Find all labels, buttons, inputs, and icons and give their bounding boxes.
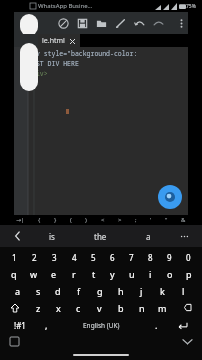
button[interactable]: l	[173, 282, 194, 299]
button[interactable]: m	[152, 299, 173, 316]
button[interactable]: !#1	[4, 316, 36, 334]
button[interactable]: Save	[73, 14, 92, 33]
button[interactable]: Open folder	[92, 14, 111, 33]
button[interactable]: 5	[84, 250, 103, 265]
staticText: 6	[110, 252, 115, 263]
staticText: '	[150, 216, 152, 224]
button[interactable]: r	[64, 265, 84, 282]
button[interactable]: z	[28, 299, 48, 316]
button[interactable]: Switch keyboard	[8, 335, 20, 347]
staticText: n	[139, 302, 145, 314]
button[interactable]: 8	[141, 250, 160, 265]
button[interactable]: {	[38, 216, 41, 224]
button[interactable]: '	[150, 216, 152, 224]
staticText: y	[110, 268, 115, 280]
button[interactable]: 2	[24, 250, 44, 265]
staticText: x	[56, 302, 61, 314]
button[interactable]: n	[131, 299, 152, 316]
button[interactable]: w	[24, 265, 44, 282]
button[interactable]: English (UK)	[56, 316, 146, 334]
staticText: →|	[16, 216, 25, 224]
button[interactable]: }	[54, 216, 57, 224]
staticText: q	[11, 268, 17, 280]
button[interactable]: j	[131, 282, 152, 299]
button[interactable]: Hide keyboard	[180, 334, 194, 348]
staticText: .	[155, 319, 158, 331]
button[interactable]: k	[152, 282, 173, 299]
staticText: p	[186, 268, 192, 280]
button[interactable]: g	[89, 282, 110, 299]
button[interactable]: 0	[179, 250, 198, 265]
button[interactable]: ,	[36, 316, 56, 334]
staticText: h	[118, 285, 124, 297]
button[interactable]: <	[101, 216, 105, 224]
button[interactable]: Redo	[149, 14, 168, 33]
button[interactable]: x	[48, 299, 68, 316]
button[interactable]: h	[110, 282, 131, 299]
button[interactable]: More suggestions	[176, 228, 192, 244]
staticText: o	[167, 268, 173, 280]
staticText: 75%	[186, 3, 196, 10]
staticText: (	[70, 216, 72, 224]
staticText: !#1	[14, 320, 26, 331]
button[interactable]: )	[85, 216, 87, 224]
button[interactable]: y	[103, 265, 122, 282]
button[interactable]: c	[68, 299, 89, 316]
button[interactable]: "	[165, 216, 168, 224]
button[interactable]: ;	[135, 216, 137, 224]
button[interactable]: 6	[103, 250, 122, 265]
button[interactable]: 7	[122, 250, 141, 265]
button[interactable]: Backspace	[173, 299, 200, 316]
staticText: g	[97, 285, 103, 297]
staticText: the	[94, 231, 107, 242]
button[interactable]: a	[140, 229, 157, 244]
button[interactable]: 9	[160, 250, 179, 265]
staticText: f	[77, 285, 81, 297]
button[interactable]: f	[68, 282, 89, 299]
button[interactable]: b	[110, 299, 131, 316]
button[interactable]: q	[4, 265, 24, 282]
button[interactable]: t	[84, 265, 103, 282]
button[interactable]: the	[88, 229, 113, 244]
staticText: >	[118, 216, 122, 224]
button[interactable]: u	[122, 265, 141, 282]
staticText: r	[72, 268, 76, 280]
button[interactable]: p	[179, 265, 198, 282]
staticText: j	[140, 285, 143, 297]
button[interactable]: i	[141, 265, 160, 282]
button[interactable]: >	[118, 216, 122, 224]
button[interactable]: &	[181, 216, 186, 224]
button[interactable]: Enter	[166, 316, 198, 334]
button[interactable]: .	[146, 316, 166, 334]
button[interactable]: (	[70, 216, 72, 224]
button[interactable]: More options	[174, 14, 188, 33]
button[interactable]: Edit	[111, 14, 130, 33]
button[interactable]: 4	[64, 250, 84, 265]
button[interactable]: Close tab	[69, 38, 76, 45]
button[interactable]: Run	[158, 185, 182, 209]
button[interactable]: a	[8, 282, 28, 299]
staticText: 2	[32, 252, 37, 263]
button[interactable]: o	[160, 265, 179, 282]
button[interactable]: Back	[10, 228, 26, 244]
staticText: a	[15, 285, 21, 297]
staticText: ,	[45, 319, 48, 331]
button[interactable]: Shift	[2, 299, 28, 316]
button[interactable]: Undo	[130, 14, 149, 33]
button[interactable]: 1	[4, 250, 24, 265]
button[interactable]: Sync	[54, 14, 73, 33]
staticText: k	[160, 285, 165, 297]
button[interactable]: v	[89, 299, 110, 316]
staticText: z	[36, 302, 41, 314]
staticText: is	[49, 231, 55, 242]
button[interactable]: le.html	[42, 34, 76, 47]
staticText: le.html	[42, 36, 65, 46]
button[interactable]: →|	[16, 216, 25, 224]
staticText: a	[146, 231, 151, 242]
button[interactable]: 3	[44, 250, 64, 265]
button[interactable]: s	[28, 282, 48, 299]
button[interactable]: is	[43, 229, 61, 244]
button[interactable]: e	[44, 265, 64, 282]
staticText: 4	[72, 252, 77, 263]
button[interactable]: d	[48, 282, 68, 299]
